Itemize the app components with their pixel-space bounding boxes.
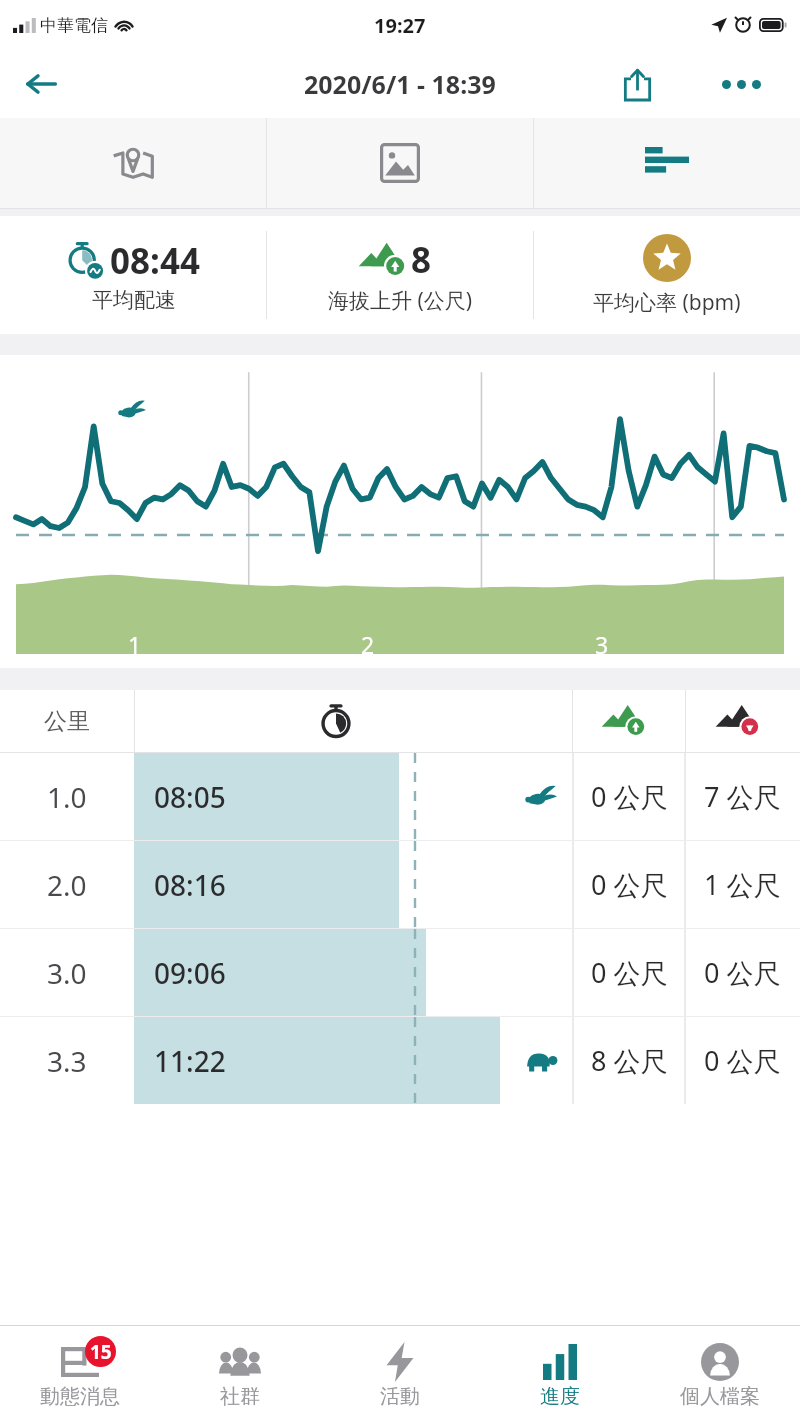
button[interactable]: 2.0 bbox=[0, 841, 800, 928]
staticText: 3 bbox=[595, 629, 609, 660]
staticText: 動態消息 bbox=[40, 1384, 120, 1409]
staticText: 0 公尺 bbox=[591, 866, 668, 903]
button[interactable]: 社群 bbox=[160, 1326, 320, 1423]
staticText: 0 公尺 bbox=[704, 1042, 781, 1079]
button[interactable]: More options bbox=[710, 53, 772, 115]
button[interactable]: 3.0 bbox=[0, 929, 800, 1016]
staticText: 19:27 bbox=[374, 12, 426, 39]
button[interactable]: 個人檔案 bbox=[640, 1326, 800, 1423]
button[interactable]: 15 bbox=[0, 1326, 160, 1423]
staticText: 平均心率 (bpm) bbox=[593, 288, 741, 317]
staticText: 活動 bbox=[380, 1384, 420, 1409]
staticText: 公里 bbox=[44, 707, 90, 736]
staticText: 0 公尺 bbox=[591, 778, 668, 815]
staticText: 0 公尺 bbox=[704, 954, 781, 991]
button[interactable]: 進度 bbox=[480, 1326, 640, 1423]
staticText: 08:44 bbox=[110, 237, 200, 285]
staticText: 平均配速 bbox=[92, 287, 176, 313]
staticText: 社群 bbox=[220, 1384, 260, 1409]
staticText: 1.0 bbox=[47, 778, 87, 816]
staticText: 進度 bbox=[540, 1384, 580, 1409]
staticText: 個人檔案 bbox=[680, 1384, 760, 1409]
button[interactable]: 活動 bbox=[320, 1326, 480, 1423]
staticText: 2020/6/1 - 18:39 bbox=[304, 67, 496, 101]
button[interactable]: Back bbox=[10, 53, 72, 115]
staticText: 2 bbox=[361, 629, 375, 660]
staticText: 8 公尺 bbox=[591, 1042, 668, 1079]
button[interactable]: 08:44 bbox=[0, 216, 266, 334]
staticText: 08:05 bbox=[154, 778, 226, 816]
staticText: 11:22 bbox=[154, 1042, 226, 1080]
staticText: 2.0 bbox=[47, 866, 87, 904]
button[interactable]: 平均心率 (bpm) bbox=[534, 216, 800, 334]
staticText: 09:06 bbox=[154, 954, 226, 992]
button[interactable]: 1.0 bbox=[0, 753, 800, 840]
staticText: 08:16 bbox=[154, 866, 226, 904]
button[interactable]: Map bbox=[0, 118, 266, 208]
button[interactable]: 8 bbox=[267, 216, 533, 334]
staticText: 1 bbox=[128, 629, 142, 660]
button[interactable]: Share bbox=[606, 53, 668, 115]
button[interactable]: 3.3 bbox=[0, 1017, 800, 1104]
staticText: 7 公尺 bbox=[704, 778, 781, 815]
staticText: 1 公尺 bbox=[704, 866, 781, 903]
staticText: 3.0 bbox=[47, 954, 87, 992]
staticText: 海拔上升 (公尺) bbox=[328, 286, 473, 315]
staticText: 3.3 bbox=[47, 1042, 87, 1080]
staticText: 中華電信 bbox=[40, 15, 108, 36]
button[interactable]: Photos bbox=[267, 118, 533, 208]
staticText: 0 公尺 bbox=[591, 954, 668, 991]
staticText: 8 bbox=[411, 236, 432, 284]
staticText: 15 bbox=[90, 1339, 112, 1365]
button[interactable]: Statistics bbox=[534, 118, 800, 208]
